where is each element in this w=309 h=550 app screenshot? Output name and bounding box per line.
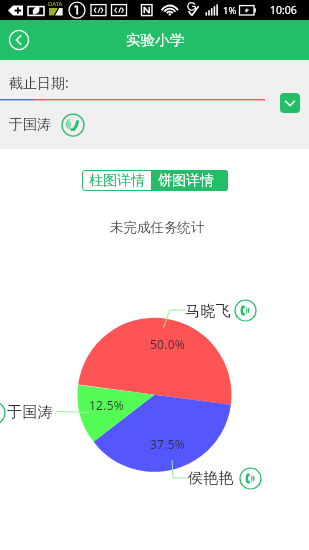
button[interactable]: Select date: [280, 93, 300, 113]
staticText: 未完成任务统计: [110, 219, 205, 236]
staticText: 马晓飞: [185, 302, 232, 321]
staticText: 1%: [223, 4, 237, 17]
staticText: 饼图详情: [158, 172, 214, 190]
staticText: 12.5%: [89, 397, 125, 413]
staticText: 侯艳艳: [188, 469, 235, 488]
button[interactable]: 饼图详情: [151, 170, 228, 191]
button[interactable]: Call 马晓飞: [234, 299, 257, 322]
button[interactable]: Call 于国涛: [61, 113, 85, 137]
button[interactable]: Call 于国涛: [0, 401, 6, 425]
staticText: DATA: [48, 0, 63, 8]
staticText: 截止日期:: [9, 73, 69, 92]
button[interactable]: Back: [9, 30, 29, 50]
button[interactable]: Call 侯艳艳: [239, 467, 262, 490]
staticText: 实验小学: [126, 31, 184, 49]
staticText: 于国涛: [7, 403, 54, 422]
staticText: 10:06: [270, 3, 297, 17]
staticText: 50.0%: [150, 336, 186, 352]
staticText: 37.5%: [150, 436, 186, 452]
staticText: 柱图详情: [89, 172, 145, 190]
staticText: 于国涛: [9, 116, 51, 134]
button[interactable]: 柱图详情: [82, 170, 151, 191]
